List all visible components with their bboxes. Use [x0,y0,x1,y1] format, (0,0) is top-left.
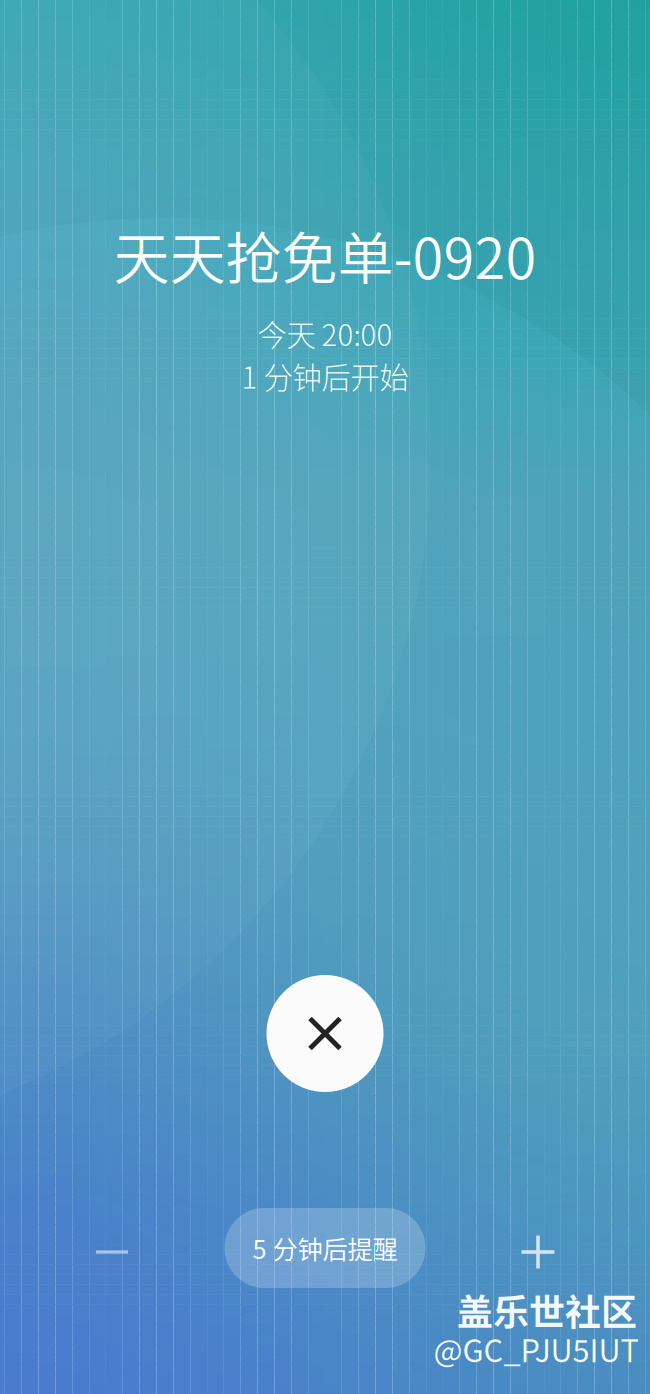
staticText: 5 分钟后提醒 [252,1230,397,1266]
staticText: 天天抢免单-0920 [113,214,536,295]
button[interactable]: Increase snooze duration [493,1208,583,1288]
button[interactable]: Dismiss alarm [266,975,383,1092]
button[interactable]: Decrease snooze duration [67,1208,157,1288]
staticText: @GC_PJU5IUT [433,1327,638,1371]
staticText: 1 分钟后开始 [241,355,408,397]
button[interactable]: 5 分钟后提醒 [224,1208,425,1288]
staticText: 今天 20:00 [257,312,392,355]
staticText: 盖乐世社区 [457,1284,637,1336]
